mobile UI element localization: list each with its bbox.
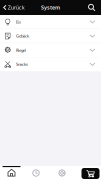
button[interactable]: Cart (81, 167, 101, 179)
button[interactable]: Search (88, 1, 101, 14)
staticText: Zurück (8, 4, 25, 11)
button[interactable]: Home (0, 166, 23, 180)
button[interactable]: Riegel (0, 43, 101, 57)
button[interactable]: Eis (0, 15, 101, 29)
staticText: Eis (16, 19, 21, 24)
button[interactable]: Snacks (0, 57, 101, 71)
staticText: System (41, 4, 60, 11)
button[interactable]: Zurück (0, 1, 25, 14)
button[interactable]: Gebäck (0, 29, 101, 43)
button[interactable]: History (23, 166, 49, 180)
staticText: Gebäck (16, 33, 29, 39)
staticText: Snacks (16, 62, 28, 67)
staticText: Riegel (16, 47, 26, 53)
button[interactable]: Settings (49, 166, 75, 180)
